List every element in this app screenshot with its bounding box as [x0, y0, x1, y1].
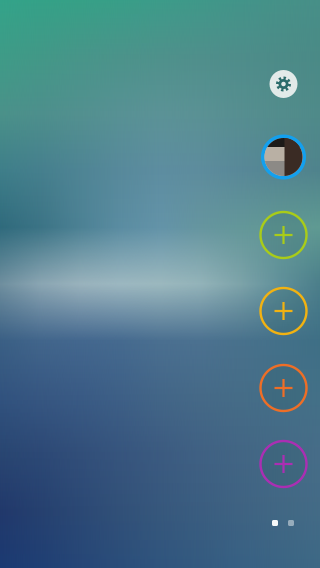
button[interactable]: Add account	[256, 437, 310, 491]
button[interactable]: Add account	[256, 361, 310, 415]
button[interactable]: Add account	[256, 284, 310, 338]
button[interactable]: Settings	[261, 62, 305, 106]
button[interactable]: Add account	[256, 208, 310, 262]
button[interactable]: Current account	[257, 131, 309, 183]
